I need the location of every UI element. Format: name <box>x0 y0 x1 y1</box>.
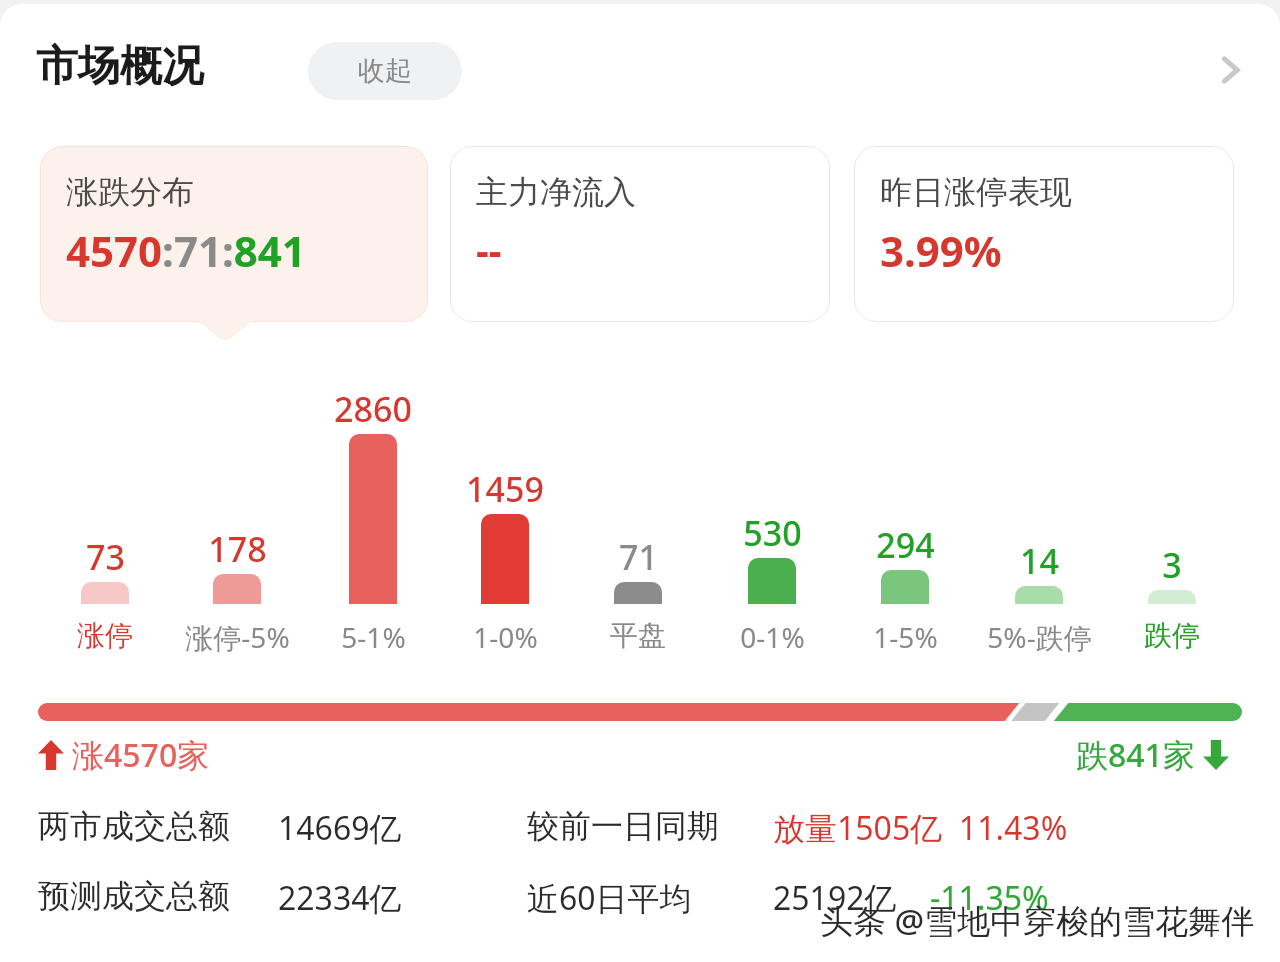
staticText: 跌841家 <box>1076 733 1195 777</box>
button[interactable]: 1-0% <box>425 618 585 656</box>
button[interactable]: 主力净流入 <box>450 146 830 322</box>
staticText: 涨停 <box>77 618 133 653</box>
staticText: 22334亿 <box>278 876 402 920</box>
button[interactable]: 5-1% <box>293 618 453 656</box>
staticText: 4570:71:841 <box>66 222 306 279</box>
staticText: 5-1% <box>341 618 406 656</box>
staticText: 跌停 <box>1144 618 1200 653</box>
staticText: 较前一日同期 <box>527 806 719 846</box>
staticText: 530 <box>743 510 802 556</box>
button[interactable]: 涨停 <box>25 618 185 653</box>
staticText: 73 <box>86 534 125 580</box>
staticText: 71 <box>619 534 658 580</box>
staticText: 25192亿 <box>773 876 897 920</box>
staticText: 1-0% <box>473 618 538 656</box>
button[interactable]: 1-5% <box>825 618 985 656</box>
staticText: 收起 <box>358 54 412 88</box>
staticText: 平盘 <box>610 618 666 653</box>
staticText: 两市成交总额 <box>38 806 230 846</box>
staticText: 2860 <box>334 386 412 432</box>
staticText: 昨日涨停表现 <box>880 172 1072 212</box>
staticText: 178 <box>208 526 267 572</box>
button[interactable]: 更多 <box>1196 36 1264 104</box>
staticText: 1-5% <box>873 618 938 656</box>
button[interactable]: 5%-跌停 <box>959 618 1119 656</box>
staticText: 预测成交总额 <box>38 876 230 916</box>
staticText: 涨跌分布 <box>66 172 194 212</box>
staticText: 0-1% <box>740 618 805 656</box>
button[interactable]: 0-1% <box>692 618 852 656</box>
button[interactable]: 涨停-5% <box>157 618 317 656</box>
staticText: 涨停-5% <box>185 618 290 656</box>
staticText: 头条 @雪地中穿梭的雪花舞伴 <box>820 898 1255 943</box>
staticText: -- <box>476 222 502 276</box>
staticText: 3.99% <box>880 222 1002 279</box>
button[interactable]: 收起 <box>308 42 462 100</box>
button[interactable]: 跌停 <box>1092 618 1252 653</box>
staticText: 放量1505亿 11.43% <box>773 806 1068 850</box>
staticText: -11.35% <box>930 876 1049 920</box>
staticText: 294 <box>876 522 935 568</box>
button[interactable]: 涨跌分布 <box>40 146 428 322</box>
button[interactable]: 平盘 <box>558 618 718 653</box>
staticText: 14 <box>1020 538 1059 584</box>
staticText: 近60日平均 <box>527 876 692 920</box>
button[interactable]: 涨4570家 <box>38 733 210 777</box>
staticText: 涨4570家 <box>72 733 210 777</box>
staticText: 市场概况 <box>36 40 204 93</box>
staticText: 14669亿 <box>278 806 402 850</box>
button[interactable]: 跌841家 <box>1076 733 1229 777</box>
staticText: 主力净流入 <box>476 172 636 212</box>
staticText: 5%-跌停 <box>987 618 1092 656</box>
button[interactable]: 昨日涨停表现 <box>854 146 1234 322</box>
staticText: 3 <box>1162 542 1182 588</box>
staticText: 1459 <box>466 466 544 512</box>
